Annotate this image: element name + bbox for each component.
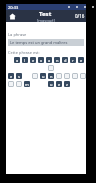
- staticText: n: [50, 74, 53, 79]
- staticText: l: [24, 58, 26, 63]
- button[interactable]: Home: [6, 10, 18, 22]
- staticText: u: [42, 74, 45, 79]
- staticText: s: [18, 74, 20, 79]
- staticText: 0/16: [75, 13, 85, 19]
- staticText: Le temps est un grand maîtres: [10, 40, 68, 45]
- staticText: [masqué]: [37, 18, 55, 22]
- staticText: a: [48, 58, 51, 63]
- staticText: r: [72, 58, 74, 63]
- staticText: e: [32, 58, 35, 63]
- staticText: z: [66, 82, 68, 87]
- staticText: x: [40, 58, 43, 63]
- staticText: Test: [39, 10, 52, 18]
- staticText: a: [16, 58, 19, 63]
- staticText: n: [56, 58, 59, 63]
- staticText: e: [58, 82, 61, 87]
- staticText: Cette phrase est:: [8, 50, 40, 55]
- staticText: 20:33: [8, 5, 19, 10]
- staticText: u: [50, 82, 53, 87]
- staticText: La phrase: [8, 32, 27, 37]
- staticText: m: [25, 82, 29, 87]
- staticText: e: [80, 58, 83, 63]
- staticText: d: [64, 58, 67, 63]
- staticText: e: [10, 74, 13, 79]
